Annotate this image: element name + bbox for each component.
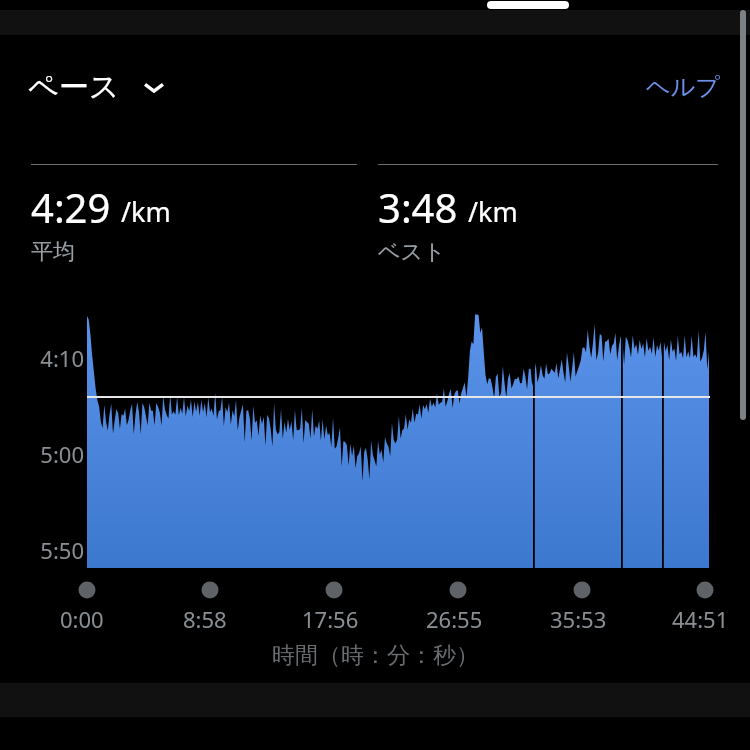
button[interactable]: ヘルプ [644,66,722,108]
staticText: 44:51 [672,604,729,634]
staticText: 時間（時：分：秒） [272,641,479,670]
staticText: 5:00 [40,439,84,469]
staticText: /km [468,193,518,230]
button[interactable]: Change metric: Pace [28,68,168,106]
staticText: 4:29 [31,180,111,234]
staticText: 0:00 [60,604,104,634]
staticText: ベスト [378,238,446,266]
staticText: ヘルプ [646,72,720,102]
staticText: /km [121,193,171,230]
staticText: 26:55 [426,604,483,634]
button[interactable]: 3:48 [378,164,718,266]
staticText: 35:53 [550,604,607,634]
staticText: 5:50 [40,535,84,565]
button[interactable]: 4:29 [31,164,357,266]
staticText: 3:48 [378,180,458,234]
staticText: 平均 [31,238,75,266]
staticText: 4:10 [40,343,84,373]
staticText: 17:56 [302,604,359,634]
staticText: 8:58 [183,604,227,634]
staticText: ペース [28,68,120,106]
